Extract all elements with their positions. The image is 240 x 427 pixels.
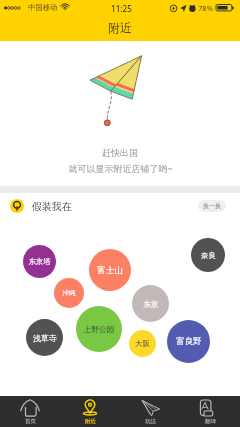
staticText: 假装我在 <box>32 200 72 213</box>
button[interactable]: 浅草寺 <box>26 319 63 356</box>
button[interactable]: 大阪 <box>129 330 156 357</box>
staticText: 附近 <box>108 20 132 35</box>
button[interactable]: 首页 <box>0 396 60 427</box>
staticText: 上野公园 <box>83 324 115 334</box>
staticText: 附近 <box>85 418 96 425</box>
staticText: 富良野 <box>176 336 202 347</box>
staticText: 奈良 <box>201 251 216 260</box>
button[interactable]: 玩法 <box>120 396 180 427</box>
staticText: 赶快出国 <box>102 147 138 158</box>
button[interactable]: 翻译 <box>180 396 240 427</box>
staticText: 大阪 <box>135 339 150 348</box>
button[interactable]: 奈良 <box>191 238 225 272</box>
button[interactable]: 换一换 <box>198 200 226 212</box>
staticText: 富士山 <box>97 265 123 276</box>
staticText: 玩法 <box>145 418 156 425</box>
button[interactable]: 假装我在 <box>10 199 72 213</box>
staticText: 冲绳 <box>62 289 76 297</box>
staticText: 78% <box>198 3 213 13</box>
staticText: 就可以显示附近店铺了哟~ <box>68 162 173 174</box>
staticText: 浅草寺 <box>33 333 57 343</box>
staticText: 翻译 <box>205 418 216 425</box>
button[interactable]: 附近 <box>60 396 120 427</box>
button[interactable]: 东京 <box>132 285 169 322</box>
button[interactable]: 东京塔 <box>23 245 56 278</box>
button[interactable]: 富士山 <box>89 249 131 291</box>
staticText: 东京 <box>143 299 159 309</box>
button[interactable]: 冲绳 <box>54 278 84 308</box>
staticText: 11:25 <box>111 3 132 14</box>
button[interactable]: 富良野 <box>167 320 210 363</box>
staticText: 首页 <box>25 418 36 425</box>
button[interactable]: 上野公园 <box>76 306 122 352</box>
staticText: 中国移动 <box>28 3 58 12</box>
staticText: 换一换 <box>203 202 221 210</box>
staticText: 东京塔 <box>28 257 51 266</box>
